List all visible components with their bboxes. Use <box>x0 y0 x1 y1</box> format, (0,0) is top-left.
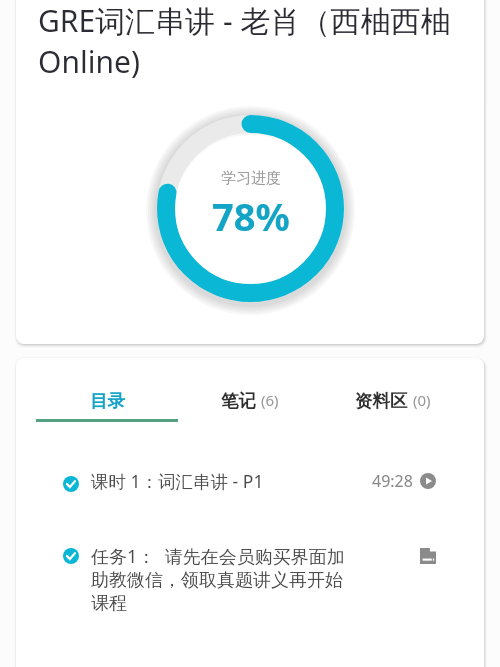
button[interactable]: Completed <box>16 544 484 615</box>
other: Completed <box>63 476 79 492</box>
button[interactable]: Completed <box>16 468 484 494</box>
staticText: 任务1： 请先在会员购买界面加助教微信，领取真题讲义再开始课程 <box>91 544 349 615</box>
staticText: 49:28 <box>372 470 413 492</box>
staticText: 目录 <box>90 390 125 412</box>
button[interactable]: 笔记 <box>178 358 321 422</box>
staticText: (0) <box>413 390 431 410</box>
staticText: GRE词汇串讲 - 老肖（西柚西柚Online) <box>38 0 466 82</box>
button[interactable]: 资料区 <box>321 358 464 422</box>
other: Document <box>420 548 436 564</box>
other: Completed <box>63 548 79 564</box>
staticText: 资料区 <box>355 390 408 412</box>
button[interactable]: 目录 <box>36 358 178 422</box>
other: Play <box>420 473 436 489</box>
staticText: 笔记 <box>221 390 256 412</box>
staticText: 学习进度 <box>221 169 281 188</box>
staticText: (6) <box>261 390 279 410</box>
staticText: 78% <box>212 190 290 242</box>
staticText: 课时 1：词汇串讲 - P1 <box>91 469 264 493</box>
